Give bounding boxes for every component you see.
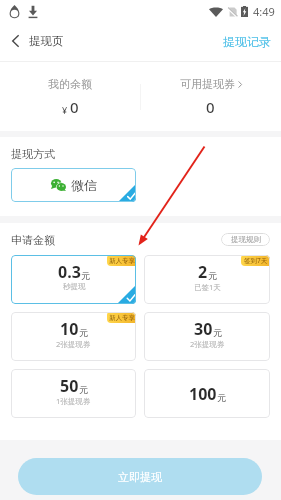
button[interactable]: 提现记录 bbox=[212, 28, 281, 56]
staticText: 我的余额 bbox=[48, 77, 92, 91]
staticText: 新人专享 bbox=[109, 257, 135, 265]
staticText: 1张提现券 bbox=[56, 396, 91, 406]
staticText: 10 bbox=[60, 318, 79, 340]
staticText: 4:49 bbox=[253, 4, 275, 19]
staticText: 提现页 bbox=[29, 34, 64, 48]
staticText: 提现记录 bbox=[223, 34, 271, 49]
staticText: 新人专享 bbox=[109, 314, 135, 322]
staticText: 2 bbox=[198, 261, 208, 283]
staticText: ¥ bbox=[62, 104, 68, 116]
button[interactable]: 我的余额 bbox=[0, 77, 140, 117]
button[interactable]: 可用提现券 bbox=[140, 77, 281, 117]
staticText: 100 bbox=[189, 383, 217, 405]
staticText: 已签1天 bbox=[194, 282, 221, 292]
button[interactable]: 0.3 bbox=[11, 255, 136, 304]
staticText: 签到7天 bbox=[244, 256, 268, 265]
button[interactable]: Back bbox=[12, 34, 281, 48]
staticText: 0 bbox=[206, 97, 215, 117]
staticText: 2张提现券 bbox=[190, 339, 225, 349]
staticText: 元 bbox=[81, 270, 90, 281]
button[interactable]: 立即提现 bbox=[18, 458, 262, 495]
staticText: 元 bbox=[213, 327, 222, 338]
button[interactable]: 10 bbox=[11, 312, 136, 361]
button[interactable]: 微信 bbox=[11, 168, 136, 202]
staticText: 元 bbox=[217, 392, 226, 403]
staticText: 0.3 bbox=[58, 261, 81, 283]
staticText: 提现规则 bbox=[231, 235, 261, 244]
staticText: 30 bbox=[194, 318, 213, 340]
staticText: 0 bbox=[70, 97, 79, 117]
staticText: 元 bbox=[79, 327, 88, 338]
other: Back bbox=[12, 35, 19, 47]
button[interactable]: 50 bbox=[11, 369, 136, 418]
staticText: 50 bbox=[60, 375, 79, 397]
button[interactable]: 2 bbox=[144, 255, 270, 304]
button[interactable]: 30 bbox=[144, 312, 270, 361]
staticText: 提现方式 bbox=[11, 147, 55, 161]
staticText: 2张提现券 bbox=[56, 339, 91, 349]
staticText: 元 bbox=[208, 270, 217, 281]
staticText: 可用提现券 bbox=[180, 77, 235, 91]
staticText: 秒提现 bbox=[63, 282, 86, 291]
button[interactable]: 提现规则 bbox=[221, 233, 270, 246]
staticText: 微信 bbox=[71, 177, 97, 193]
staticText: 元 bbox=[79, 384, 88, 395]
button[interactable]: 100 bbox=[144, 369, 270, 418]
staticText: 申请金额 bbox=[11, 233, 55, 246]
staticText: 立即提现 bbox=[118, 470, 162, 484]
